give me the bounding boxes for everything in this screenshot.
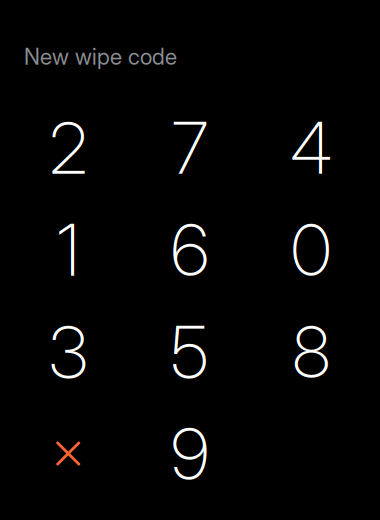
- button[interactable]: Delete: [7, 403, 129, 505]
- button[interactable]: 3: [7, 301, 129, 403]
- button[interactable]: 0: [250, 199, 372, 301]
- button[interactable]: 6: [129, 199, 250, 301]
- button[interactable]: 7: [129, 97, 250, 199]
- staticText: 0: [291, 207, 332, 293]
- staticText: 8: [292, 309, 330, 395]
- staticText: New wipe code: [24, 43, 177, 70]
- button[interactable]: 8: [250, 301, 372, 403]
- staticText: 7: [172, 105, 208, 191]
- button[interactable]: 1: [7, 199, 129, 301]
- staticText: 4: [290, 105, 332, 191]
- staticText: 9: [171, 411, 209, 497]
- button[interactable]: 9: [129, 403, 250, 505]
- button[interactable]: 2: [7, 97, 129, 199]
- staticText: 1: [57, 207, 80, 293]
- button[interactable]: 5: [129, 301, 250, 403]
- staticText: 2: [49, 105, 87, 191]
- staticText: 6: [171, 207, 209, 293]
- button[interactable]: 4: [250, 97, 372, 199]
- staticText: 3: [49, 309, 88, 395]
- staticText: 5: [171, 309, 209, 395]
